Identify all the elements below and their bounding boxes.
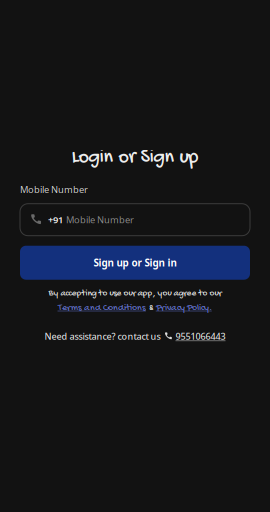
- button[interactable]: Terms and Conditions: [58, 302, 146, 314]
- staticText: +91: [48, 213, 63, 226]
- staticText: Sign up or Sign in: [93, 256, 176, 269]
- button[interactable]: 9551066443: [175, 330, 225, 342]
- staticText: Login or Sign up: [71, 146, 198, 170]
- staticText: Mobile Number: [66, 213, 134, 226]
- staticText: By accepting to use our app, you agree t…: [48, 288, 221, 299]
- staticText: Need assistance? contact us: [44, 330, 160, 342]
- staticText: Terms and Conditions: [58, 302, 146, 314]
- button[interactable]: Privacy Policy.: [156, 302, 212, 314]
- staticText: Mobile Number: [20, 183, 88, 196]
- staticText: &: [149, 303, 153, 314]
- staticText: 9551066443: [175, 330, 225, 342]
- staticText: Privacy Policy.: [156, 302, 212, 314]
- button[interactable]: Sign up or Sign in: [20, 246, 250, 280]
